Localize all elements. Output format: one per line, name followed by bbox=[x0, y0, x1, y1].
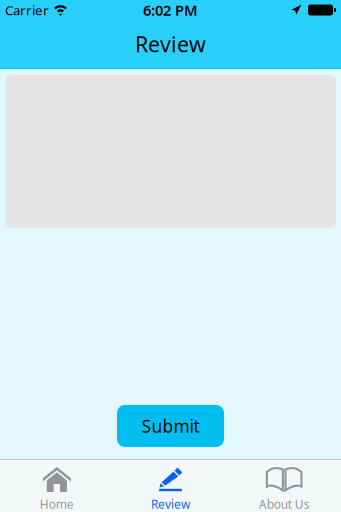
staticText: Review bbox=[135, 30, 206, 58]
button[interactable]: Home bbox=[0, 458, 114, 512]
staticText: 6:02 PM bbox=[143, 0, 198, 20]
staticText: Home bbox=[40, 496, 74, 512]
staticText: About Us bbox=[259, 496, 310, 512]
staticText: Carrier bbox=[5, 1, 49, 19]
button[interactable]: Review bbox=[114, 458, 227, 512]
staticText: Submit bbox=[141, 414, 199, 437]
button[interactable]: Submit bbox=[117, 405, 224, 447]
button[interactable]: About Us bbox=[227, 458, 341, 512]
staticText: Review bbox=[151, 496, 190, 512]
